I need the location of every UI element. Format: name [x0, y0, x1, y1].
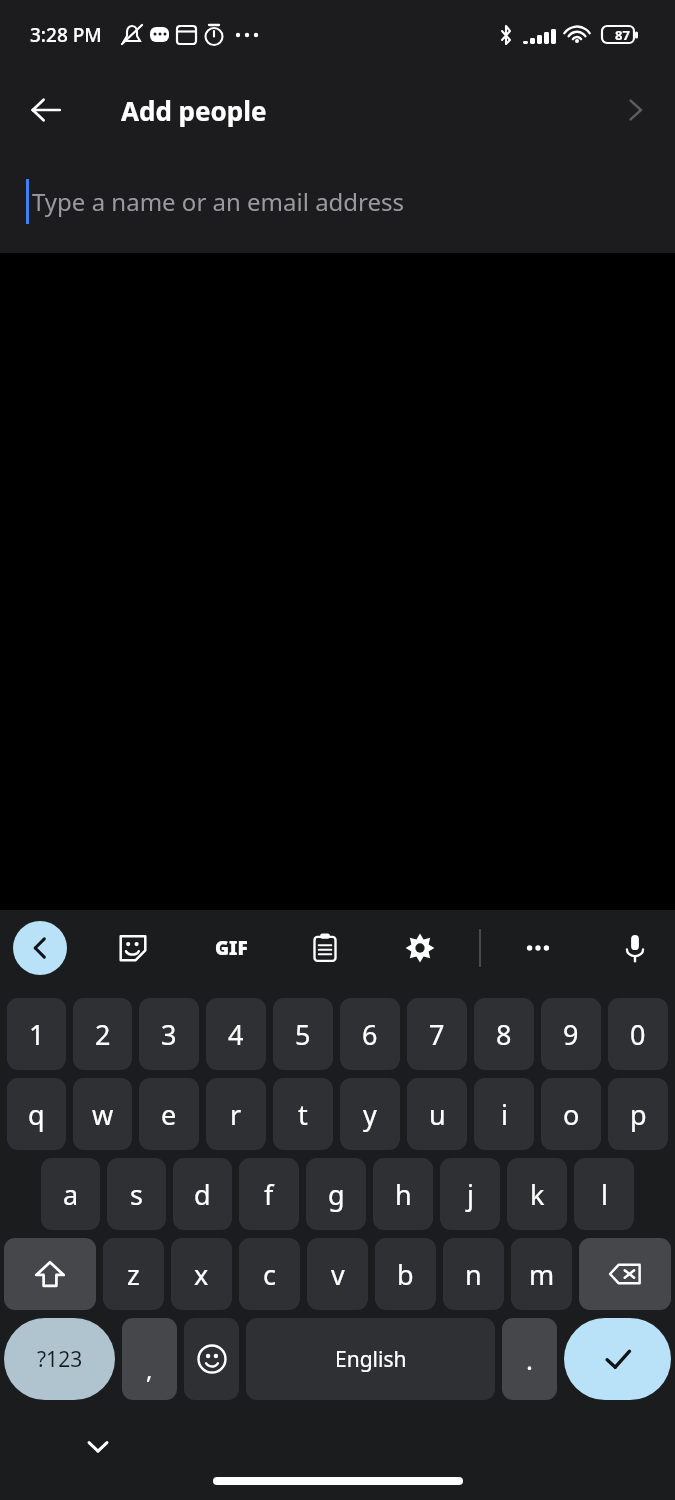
- staticText: Type a name or an email address: [32, 185, 405, 218]
- button[interactable]: i: [474, 1078, 534, 1150]
- button[interactable]: v: [307, 1238, 368, 1310]
- staticText: c: [263, 1256, 276, 1293]
- button[interactable]: Stickers: [106, 921, 160, 975]
- button[interactable]: t: [273, 1078, 333, 1150]
- staticText: 5: [295, 1016, 311, 1053]
- staticText: Add people: [121, 93, 267, 128]
- button[interactable]: l: [574, 1158, 634, 1230]
- button[interactable]: a: [41, 1158, 100, 1230]
- button[interactable]: Settings: [393, 921, 447, 975]
- button[interactable]: 0: [608, 998, 668, 1070]
- button[interactable]: .: [502, 1318, 557, 1400]
- staticText: n: [465, 1256, 482, 1293]
- button[interactable]: q: [7, 1078, 66, 1150]
- staticText: v: [331, 1256, 345, 1293]
- button[interactable]: Type a name or an email address: [0, 150, 675, 253]
- staticText: h: [395, 1176, 412, 1213]
- staticText: 6: [362, 1016, 378, 1053]
- staticText: y: [363, 1096, 377, 1133]
- staticText: .: [526, 1342, 533, 1377]
- staticText: English: [335, 1345, 407, 1374]
- staticText: j: [467, 1176, 474, 1213]
- staticText: 7: [429, 1016, 445, 1053]
- button[interactable]: Shift: [4, 1238, 96, 1310]
- button[interactable]: 4: [206, 998, 266, 1070]
- button[interactable]: 1: [7, 998, 66, 1070]
- button[interactable]: 9: [541, 998, 601, 1070]
- button[interactable]: 3: [139, 998, 199, 1070]
- staticText: u: [429, 1096, 446, 1133]
- button[interactable]: k: [507, 1158, 567, 1230]
- button[interactable]: Enter: [564, 1318, 671, 1400]
- staticText: 2: [95, 1016, 111, 1053]
- button[interactable]: English: [246, 1318, 495, 1400]
- staticText: 3:28 PM: [30, 22, 102, 48]
- button[interactable]: Emoji: [184, 1318, 239, 1400]
- button[interactable]: Next: [607, 82, 663, 138]
- button[interactable]: r: [206, 1078, 266, 1150]
- staticText: 87: [615, 26, 630, 44]
- staticText: z: [127, 1256, 140, 1293]
- staticText: x: [194, 1256, 209, 1293]
- button[interactable]: e: [139, 1078, 199, 1150]
- button[interactable]: Collapse toolbar: [13, 921, 67, 975]
- staticText: f: [264, 1176, 274, 1213]
- staticText: k: [530, 1176, 545, 1213]
- button[interactable]: o: [541, 1078, 601, 1150]
- staticText: w: [92, 1096, 114, 1133]
- button[interactable]: h: [373, 1158, 433, 1230]
- staticText: 4: [228, 1016, 244, 1053]
- button[interactable]: w: [73, 1078, 132, 1150]
- staticText: q: [28, 1096, 45, 1133]
- staticText: 1: [29, 1016, 45, 1053]
- button[interactable]: ?123: [4, 1318, 115, 1400]
- staticText: a: [63, 1176, 79, 1213]
- button[interactable]: 5: [273, 998, 333, 1070]
- staticText: t: [298, 1096, 308, 1133]
- button[interactable]: Voice input: [608, 921, 662, 975]
- button[interactable]: Back: [16, 80, 76, 140]
- staticText: d: [194, 1176, 211, 1213]
- button[interactable]: GIF: [204, 921, 258, 975]
- button[interactable]: More options: [511, 921, 565, 975]
- button[interactable]: Hide keyboard: [70, 1418, 126, 1474]
- button[interactable]: s: [107, 1158, 166, 1230]
- staticText: b: [397, 1256, 414, 1293]
- button[interactable]: d: [173, 1158, 232, 1230]
- button[interactable]: f: [239, 1158, 299, 1230]
- staticText: p: [630, 1096, 647, 1133]
- staticText: s: [130, 1176, 143, 1213]
- button[interactable]: m: [511, 1238, 572, 1310]
- button[interactable]: g: [306, 1158, 366, 1230]
- button[interactable]: c: [239, 1238, 300, 1310]
- button[interactable]: 8: [474, 998, 534, 1070]
- button[interactable]: ,: [122, 1318, 177, 1400]
- staticText: r: [230, 1096, 242, 1133]
- staticText: 0: [630, 1016, 646, 1053]
- button[interactable]: 2: [73, 998, 132, 1070]
- staticText: m: [529, 1256, 555, 1293]
- staticText: g: [328, 1176, 345, 1213]
- staticText: 8: [496, 1016, 512, 1053]
- staticText: o: [563, 1096, 580, 1133]
- staticText: l: [601, 1176, 608, 1213]
- button[interactable]: Clipboard: [298, 921, 352, 975]
- button[interactable]: p: [608, 1078, 668, 1150]
- staticText: i: [501, 1096, 508, 1133]
- button[interactable]: y: [340, 1078, 400, 1150]
- button[interactable]: 6: [340, 998, 400, 1070]
- staticText: 9: [563, 1016, 579, 1053]
- staticText: 3: [161, 1016, 177, 1053]
- button[interactable]: Backspace: [579, 1238, 671, 1310]
- staticText: GIF: [215, 935, 248, 961]
- button[interactable]: n: [443, 1238, 504, 1310]
- button[interactable]: 7: [407, 998, 467, 1070]
- button[interactable]: j: [440, 1158, 500, 1230]
- button[interactable]: x: [171, 1238, 232, 1310]
- staticText: e: [161, 1096, 177, 1133]
- staticText: ,: [146, 1353, 153, 1386]
- button[interactable]: u: [407, 1078, 467, 1150]
- button[interactable]: z: [103, 1238, 164, 1310]
- staticText: ?123: [37, 1345, 83, 1374]
- button[interactable]: b: [375, 1238, 436, 1310]
